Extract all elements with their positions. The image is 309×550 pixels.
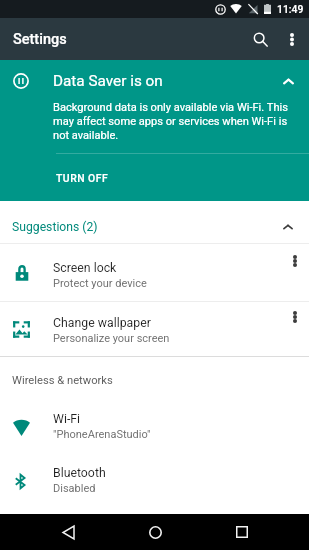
staticText: Settings bbox=[13, 31, 67, 48]
staticText: Disabled bbox=[53, 482, 96, 495]
button[interactable]: Back bbox=[51, 515, 85, 549]
button[interactable]: More options bbox=[285, 304, 305, 330]
staticText: Wi-Fi bbox=[53, 412, 81, 426]
button[interactable]: Change wallpaper bbox=[0, 302, 309, 356]
staticText: Data Saver is on bbox=[53, 72, 163, 90]
staticText: Wireless & networks bbox=[12, 374, 113, 387]
button[interactable]: More options bbox=[285, 248, 305, 274]
staticText: 11:49 bbox=[277, 3, 304, 15]
staticText: Personalize your screen bbox=[53, 332, 170, 345]
button[interactable]: Search bbox=[245, 24, 275, 54]
staticText: Suggestions (2) bbox=[12, 220, 98, 234]
button[interactable]: Bluetooth bbox=[0, 453, 309, 507]
button[interactable]: Suggestions (2) bbox=[0, 201, 309, 243]
button[interactable]: Collapse suggestions bbox=[273, 212, 303, 242]
staticText: TURN OFF bbox=[56, 172, 109, 184]
staticText: "PhoneArenaStudio" bbox=[53, 428, 151, 441]
staticText: Change wallpaper bbox=[53, 316, 151, 330]
staticText: Screen lock bbox=[53, 261, 117, 275]
button[interactable]: Collapse bbox=[270, 63, 306, 99]
button[interactable]: Recents bbox=[225, 515, 259, 549]
button[interactable]: TURN OFF bbox=[0, 154, 309, 201]
staticText: Bluetooth bbox=[53, 466, 106, 480]
staticText: Background data is only available via Wi… bbox=[53, 101, 295, 142]
button[interactable]: Screen lock bbox=[0, 244, 309, 301]
button[interactable]: Home bbox=[138, 515, 172, 549]
staticText: Protect your device bbox=[53, 277, 147, 290]
button[interactable]: Wi-Fi bbox=[0, 399, 309, 453]
button[interactable]: More options bbox=[275, 24, 309, 54]
